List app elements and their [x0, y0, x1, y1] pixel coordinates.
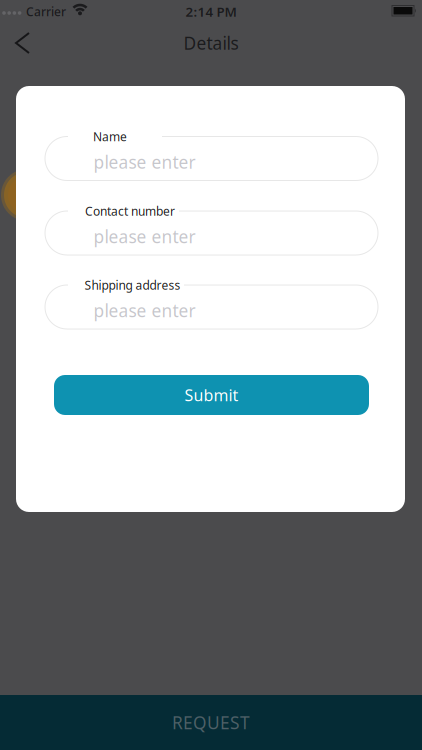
staticText: please enter [93, 299, 195, 322]
button[interactable]: Contact number [45, 211, 378, 255]
staticText: please enter [93, 225, 195, 248]
staticText: Contact number [85, 203, 175, 219]
staticText: Submit [184, 384, 238, 406]
button[interactable]: Back [5, 23, 41, 63]
staticText: Name [93, 128, 127, 144]
staticText: please enter [93, 150, 195, 173]
staticText: Shipping address [84, 277, 180, 293]
button[interactable]: Shipping address [45, 285, 378, 329]
button[interactable]: Submit [54, 375, 369, 415]
staticText: REQUEST [172, 711, 250, 734]
staticText: Carrier [26, 3, 66, 19]
button[interactable]: REQUEST [0, 695, 422, 750]
staticText: 2:14 PM [185, 3, 236, 20]
staticText: Details [183, 31, 238, 54]
button[interactable]: Name [45, 136, 378, 180]
